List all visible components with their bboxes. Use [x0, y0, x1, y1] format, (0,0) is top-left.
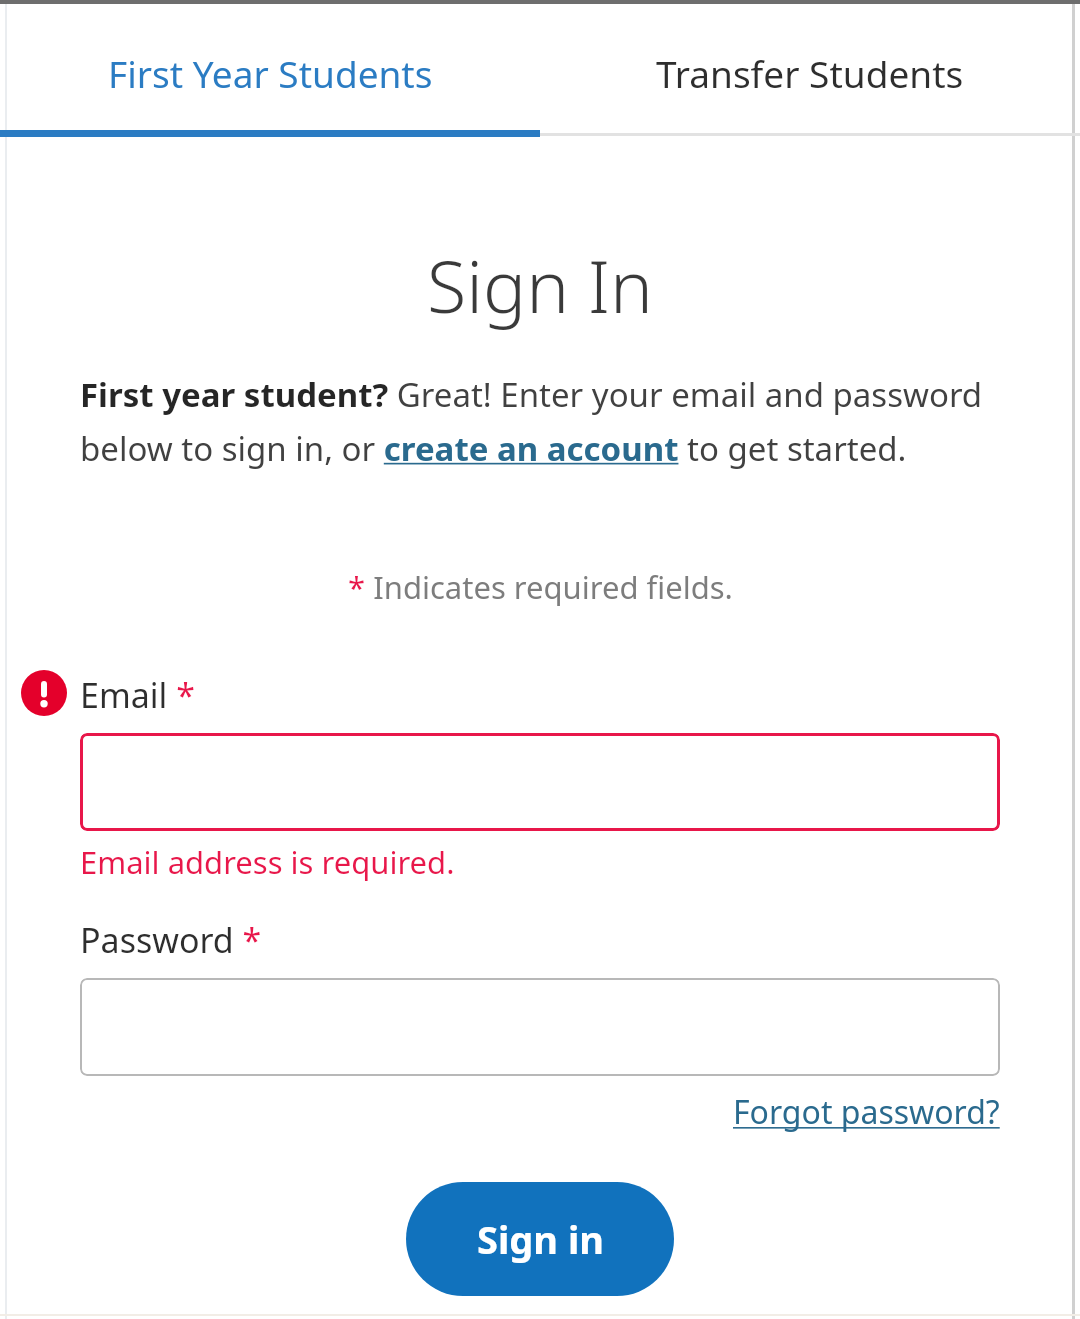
button[interactable]: Sign in	[406, 1182, 674, 1296]
staticText: Transfer Students	[656, 48, 964, 98]
staticText: Forgot password?	[733, 1090, 1000, 1134]
staticText: Sign in	[477, 1213, 604, 1265]
staticText: Email address is required.	[80, 841, 455, 883]
button[interactable]	[80, 978, 1000, 1076]
other: Error	[21, 670, 67, 716]
staticText: First year student? Great! Enter your em…	[80, 372, 1000, 470]
staticText: Password *	[80, 917, 262, 963]
staticText: * Indicates required fields.	[348, 566, 733, 608]
button[interactable]: First Year Students	[0, 4, 540, 137]
staticText: First Year Students	[108, 48, 433, 98]
button[interactable]: Transfer Students	[540, 4, 1080, 137]
button[interactable]	[80, 733, 1000, 831]
staticText: Sign In	[427, 236, 653, 334]
button[interactable]: Forgot password?	[733, 1090, 1000, 1134]
staticText: Email *	[80, 672, 195, 718]
